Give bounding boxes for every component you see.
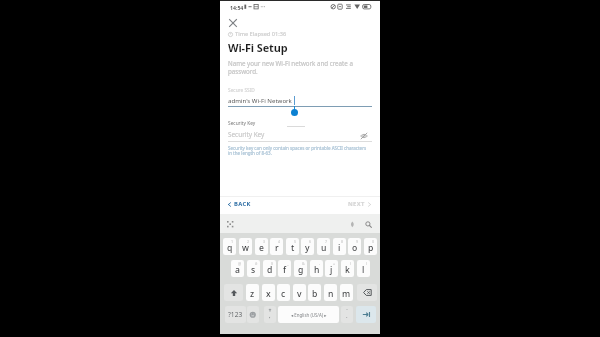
staticText: 4 <box>278 239 281 244</box>
button[interactable]: Emoji <box>247 306 259 323</box>
button[interactable]: # <box>247 260 260 277</box>
button[interactable]: Search <box>363 219 373 229</box>
button[interactable]: + <box>325 260 338 277</box>
staticText: j <box>330 264 333 276</box>
staticText: b <box>312 288 318 300</box>
staticText: y <box>305 242 310 254</box>
staticText: 8 <box>341 239 344 244</box>
button[interactable]: $ <box>263 260 276 277</box>
staticText: 2 <box>247 239 250 244</box>
button[interactable]: _ <box>278 260 291 277</box>
staticText: u <box>321 242 327 254</box>
button[interactable]: m <box>340 284 353 301</box>
button[interactable]: Space <box>278 306 339 323</box>
button[interactable]: Show password <box>357 129 371 143</box>
staticText: Secure SSID <box>228 87 255 94</box>
button[interactable]: @ <box>231 260 244 277</box>
staticText: admin's Wi-Fi Network <box>228 96 292 104</box>
staticText: & <box>302 261 305 266</box>
staticText: 3 <box>263 239 266 244</box>
staticText: x <box>266 288 271 300</box>
button[interactable]: v <box>293 284 306 301</box>
button[interactable]: Backspace <box>357 284 377 301</box>
staticText: l <box>362 264 365 276</box>
button[interactable]: BACK <box>227 196 251 212</box>
button[interactable]: 4 <box>270 238 283 255</box>
staticText: r <box>275 242 279 254</box>
staticText: , <box>269 312 271 320</box>
staticText: a <box>235 264 240 276</box>
button[interactable]: ( <box>341 260 354 277</box>
button[interactable]: 0 <box>364 238 377 255</box>
button[interactable]: Stickers <box>347 219 357 229</box>
button[interactable]: Keyboard options <box>225 219 235 229</box>
staticText: $ <box>271 261 274 266</box>
button[interactable]: Next field <box>356 306 376 323</box>
staticText: ?123 <box>228 310 243 319</box>
staticText: m <box>342 288 351 300</box>
button[interactable]: 6 <box>301 238 314 255</box>
button[interactable]: x <box>262 284 275 301</box>
staticText: " <box>346 308 348 313</box>
staticText: h <box>314 264 320 276</box>
staticText: ( <box>350 261 352 266</box>
staticText: i <box>338 242 341 254</box>
button[interactable]: Shift <box>224 284 243 301</box>
staticText: s <box>251 264 256 276</box>
button[interactable]: 3 <box>255 238 268 255</box>
button[interactable]: NEXT <box>348 196 372 212</box>
button[interactable]: Period <box>341 306 353 323</box>
button[interactable]: Symbols <box>225 306 246 323</box>
staticText: z <box>250 288 255 300</box>
button[interactable]: 2 <box>239 238 252 255</box>
staticText: ◂ English (US/A) ▸ <box>291 312 327 318</box>
staticText: Name your new Wi-Fi network and create a… <box>228 59 353 75</box>
staticText: n <box>328 288 334 300</box>
staticText: . <box>346 312 348 320</box>
staticText: # <box>255 261 258 266</box>
staticText: ) <box>366 261 368 266</box>
staticText: w <box>242 242 249 254</box>
staticText: 0 <box>372 239 375 244</box>
staticText: d <box>267 264 273 276</box>
staticText: 1 <box>231 239 234 244</box>
staticText: g <box>298 264 304 276</box>
staticText: + <box>333 261 336 266</box>
button[interactable]: 9 <box>348 238 361 255</box>
staticText: q <box>227 242 233 254</box>
staticText: t <box>291 242 295 254</box>
button[interactable]: 5 <box>286 238 299 255</box>
staticText: p <box>368 242 374 254</box>
staticText: Wi-Fi Setup <box>228 40 288 55</box>
button[interactable]: & <box>294 260 307 277</box>
button[interactable]: ) <box>357 260 370 277</box>
staticText: 14:54 <box>230 4 244 11</box>
staticText: v <box>297 288 302 300</box>
staticText: Security Key <box>228 130 265 139</box>
button[interactable]: n <box>324 284 337 301</box>
button[interactable]: 1 <box>223 238 236 255</box>
button[interactable]: c <box>277 284 290 301</box>
button[interactable]: 8 <box>333 238 346 255</box>
staticText: @ <box>238 261 242 266</box>
button[interactable]: - <box>310 260 323 277</box>
staticText: NEXT <box>348 200 365 208</box>
button[interactable]: b <box>308 284 321 301</box>
staticText: 6 <box>309 239 312 244</box>
staticText: Security Key <box>228 120 256 127</box>
staticText: c <box>281 288 286 300</box>
staticText: k <box>345 264 350 276</box>
staticText: _ <box>287 261 289 266</box>
button[interactable]: z <box>246 284 259 301</box>
staticText: 5 <box>294 239 297 244</box>
staticText: - <box>319 261 321 266</box>
staticText: Security key can only contain spaces or … <box>228 145 367 157</box>
staticText: 9 <box>356 239 359 244</box>
staticText: e <box>259 242 264 254</box>
button[interactable]: Comma <box>264 306 276 323</box>
staticText: 7 <box>325 239 328 244</box>
button[interactable]: 7 <box>317 238 330 255</box>
staticText: f <box>283 264 287 276</box>
button[interactable]: Close <box>224 14 242 32</box>
staticText: o <box>352 242 358 254</box>
